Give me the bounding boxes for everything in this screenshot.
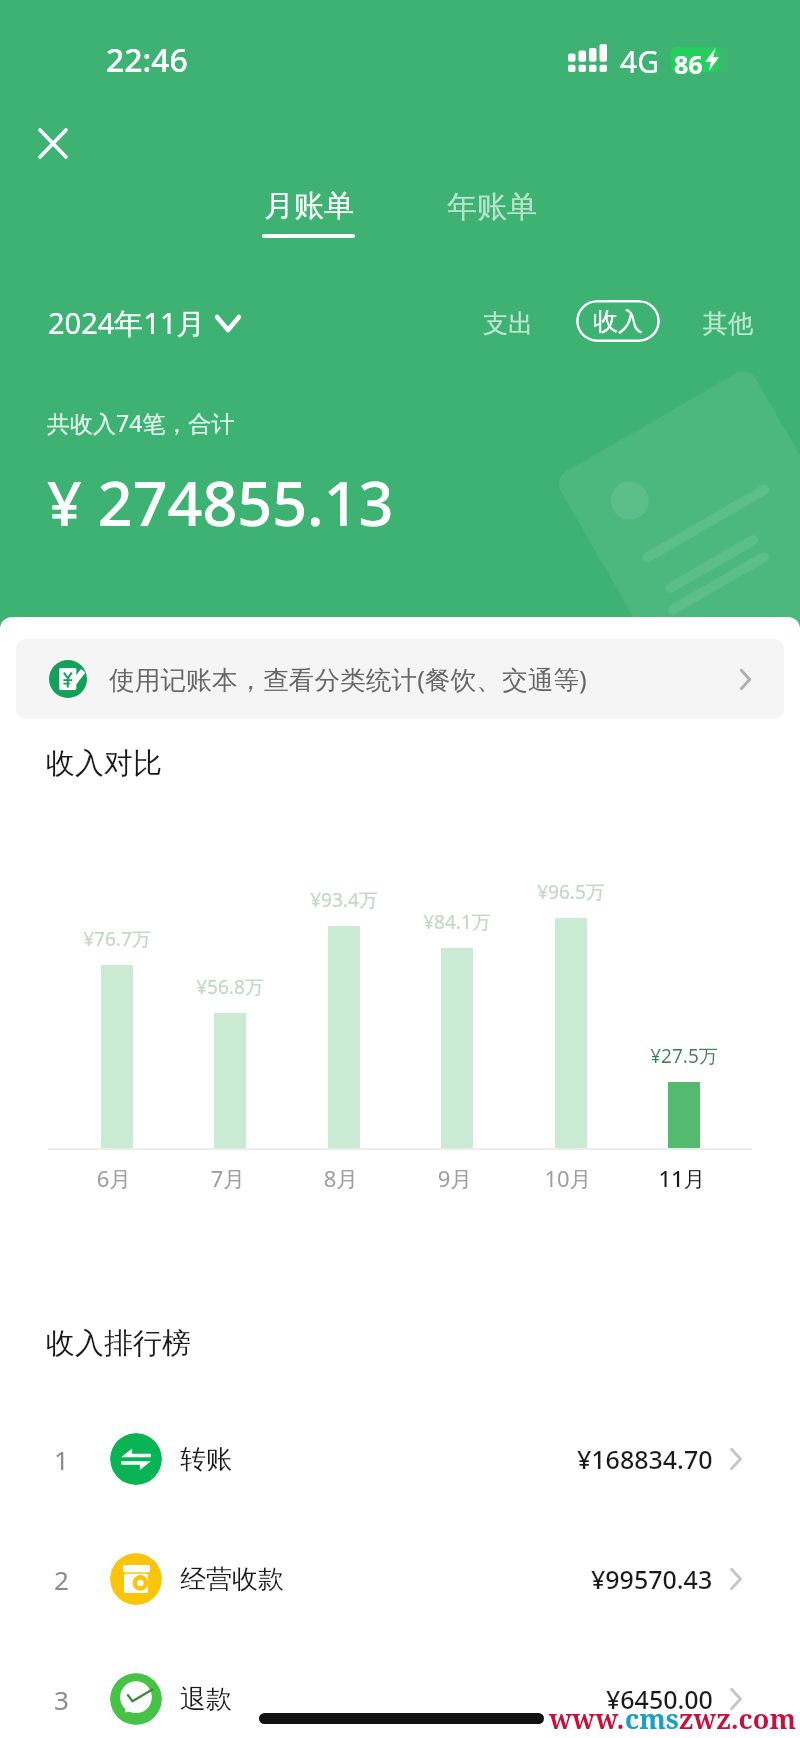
button[interactable]: 月账单 <box>262 187 355 238</box>
button[interactable]: 支出 <box>483 308 533 339</box>
staticText: 月账单 <box>264 187 354 225</box>
staticText: 转账 <box>180 1443 232 1476</box>
staticText: 1 <box>54 1442 69 1477</box>
button[interactable]: 使用记账本，查看分类统计(餐饮、交通等) <box>16 639 784 719</box>
staticText: 8月 <box>281 1163 401 1193</box>
staticText: 7月 <box>168 1163 288 1193</box>
staticText: 2024年11月 <box>48 303 206 343</box>
staticText: 6月 <box>54 1163 174 1193</box>
button[interactable]: 2 <box>0 1519 800 1639</box>
staticText: 10月 <box>508 1163 628 1193</box>
button[interactable]: 3 <box>0 1639 800 1738</box>
staticText: ¥ 274855.13 <box>47 461 394 544</box>
staticText: 使用记账本，查看分类统计(餐饮、交通等) <box>109 662 587 697</box>
staticText: 退款 <box>180 1683 232 1716</box>
staticText: www. <box>549 1700 625 1737</box>
staticText: ¥99570.43 <box>591 1562 713 1596</box>
staticText: ¥84.1万 <box>397 909 517 935</box>
staticText: 3 <box>54 1682 69 1717</box>
staticText: ¥56.8万 <box>170 974 290 1000</box>
button[interactable]: 2024年11月 <box>48 303 239 343</box>
staticText: ¥76.7万 <box>57 926 177 952</box>
staticText: ¥27.5万 <box>624 1043 744 1069</box>
button[interactable]: 收入 <box>576 300 660 342</box>
staticText: 收入 <box>593 306 643 337</box>
staticText: 86 <box>674 47 703 81</box>
staticText: 2 <box>54 1562 69 1597</box>
button[interactable]: 其他 <box>703 308 753 339</box>
staticText: 9月 <box>395 1163 515 1193</box>
staticText: 11月 <box>622 1163 742 1193</box>
button[interactable]: Close <box>26 116 80 170</box>
staticText: cms <box>625 1700 679 1737</box>
staticText: ¥96.5万 <box>511 879 631 905</box>
staticText: 经营收款 <box>180 1563 284 1596</box>
button[interactable]: 1 <box>0 1399 800 1519</box>
staticText: ¥168834.70 <box>577 1442 713 1476</box>
staticText: 收入对比 <box>46 745 162 782</box>
staticText: 共收入74笔，合计 <box>47 407 235 438</box>
staticText: 4G <box>620 41 659 82</box>
staticText: ¥6450.00 <box>606 1682 713 1716</box>
staticText: 收入排行榜 <box>46 1325 191 1362</box>
button[interactable]: 年账单 <box>447 188 537 226</box>
staticText: ¥93.4万 <box>284 887 404 913</box>
staticText: zwz.com <box>679 1700 797 1737</box>
staticText: 22:46 <box>106 38 188 82</box>
